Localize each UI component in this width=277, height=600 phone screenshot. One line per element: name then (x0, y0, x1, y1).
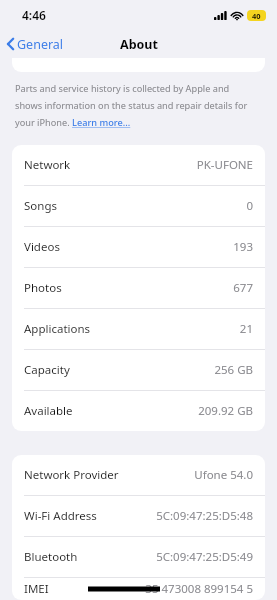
staticText: About (120, 36, 158, 53)
staticText: Videos (24, 239, 60, 255)
button[interactable]: Learn more... (72, 116, 131, 129)
button[interactable]: Back (0, 30, 72, 58)
staticText: Photos (24, 280, 62, 296)
staticText: 209.92 GB (198, 403, 253, 419)
staticText: 35 473008 899154 5 (145, 581, 253, 597)
button[interactable]: Photos (12, 268, 265, 308)
staticText: Learn more... (72, 116, 131, 129)
staticText: Parts and service history is collected b… (15, 82, 230, 95)
button[interactable]: Wi-Fi Address (12, 496, 265, 536)
staticText: Wi-Fi Address (24, 508, 97, 524)
button[interactable]: Videos (12, 227, 265, 267)
staticText: General (17, 36, 64, 53)
staticText: 677 (233, 280, 253, 296)
staticText: Network (24, 157, 71, 173)
staticText: Songs (24, 198, 57, 214)
staticText: Ufone 54.0 (194, 467, 253, 483)
staticText: Bluetooth (24, 549, 78, 565)
staticText: 5C:09:47:25:D5:48 (156, 508, 253, 524)
button[interactable]: Bluetooth (12, 537, 265, 577)
staticText: your iPhone. (15, 116, 72, 129)
button[interactable]: Applications (12, 309, 265, 349)
staticText: Capacity (24, 362, 70, 378)
staticText: 256 GB (214, 362, 253, 378)
button[interactable]: Network (12, 145, 265, 185)
button[interactable]: IMEI (12, 578, 265, 600)
staticText: 21 (239, 321, 253, 337)
button[interactable]: Capacity (12, 350, 265, 390)
other: Back (7, 38, 14, 50)
button[interactable]: Network Provider (12, 455, 265, 495)
staticText: 0 (246, 198, 253, 214)
staticText: Available (24, 403, 73, 419)
staticText: Applications (24, 321, 91, 337)
button[interactable]: Available (12, 391, 265, 431)
staticText: 40 (252, 11, 261, 21)
staticText: IMEI (24, 581, 49, 597)
staticText: shows information on the status and repa… (15, 99, 248, 112)
staticText: 5C:09:47:25:D5:49 (156, 549, 253, 565)
button[interactable]: Songs (12, 186, 265, 226)
staticText: 4:46 (22, 7, 46, 23)
staticText: 193 (233, 239, 253, 255)
staticText: PK-UFONE (196, 157, 253, 173)
staticText: Network Provider (24, 467, 119, 483)
